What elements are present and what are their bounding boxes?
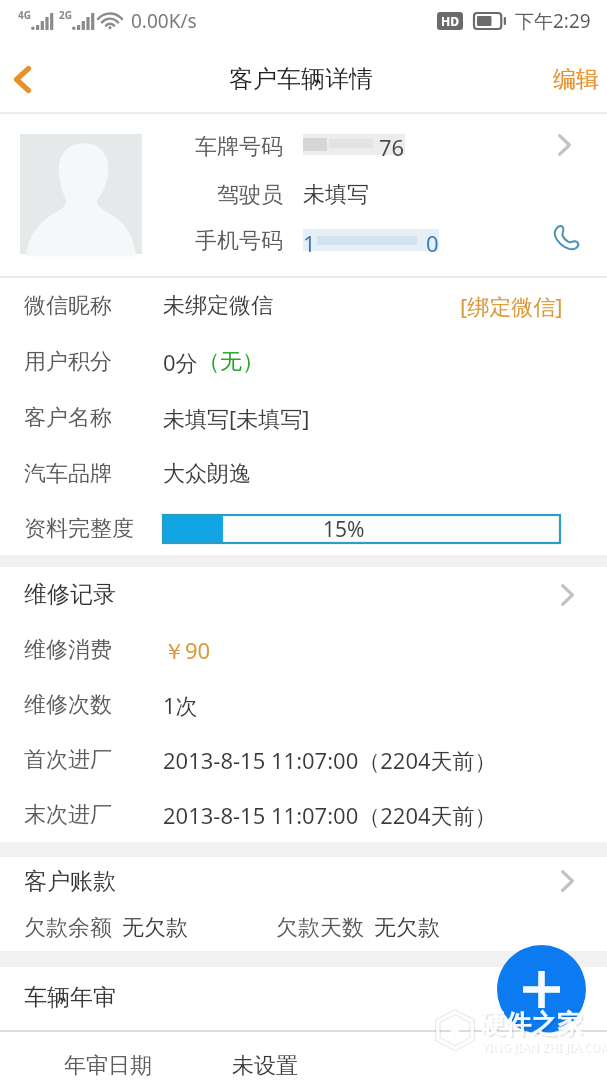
staticText: 维修消费 xyxy=(24,636,112,664)
staticText: 未填写 xyxy=(303,181,369,209)
staticText: 未设置 xyxy=(232,1052,298,1080)
staticText: 无欠款 xyxy=(122,914,188,942)
staticText: 未填写[未填写] xyxy=(163,403,310,433)
button[interactable]: [绑定微信] xyxy=(456,285,567,327)
button[interactable]: 车辆年审 xyxy=(0,967,607,1027)
staticText: 编辑 xyxy=(553,65,599,94)
staticText: 维修记录 xyxy=(24,580,116,609)
staticText: 欠款天数 xyxy=(276,914,364,942)
staticText: 客户车辆详情 xyxy=(229,64,373,94)
staticText: [绑定微信] xyxy=(460,291,563,321)
staticText: 资料完整度 xyxy=(24,515,134,543)
staticText: 维修次数 xyxy=(24,691,112,719)
staticText: 硬件之家 xyxy=(481,1010,585,1043)
staticText: 2013-8-15 11:07:00（2204天前） xyxy=(163,745,497,775)
staticText: 下午2:29 xyxy=(515,8,591,34)
button[interactable]: 客户账款 xyxy=(0,857,607,905)
staticText: YING JIAN ZHI JIA.COM xyxy=(481,1038,607,1054)
staticText: 无欠款 xyxy=(374,914,440,942)
staticText: HD xyxy=(441,13,459,29)
button[interactable]: Back xyxy=(0,46,48,112)
staticText: 客户账款 xyxy=(24,867,116,896)
staticText: 2G xyxy=(59,8,72,22)
staticText: 1次 xyxy=(163,690,198,720)
staticText: 汽车品牌 xyxy=(24,460,112,488)
staticText: 15% xyxy=(323,515,365,543)
staticText: 末次进厂 xyxy=(24,801,112,829)
button[interactable]: 维修记录 xyxy=(0,567,607,622)
staticText: 大众朗逸 xyxy=(163,460,251,488)
staticText: 1 xyxy=(303,228,316,254)
staticText: 硬件之家 xyxy=(479,1008,583,1041)
staticText: 首次进厂 xyxy=(24,746,112,774)
staticText: 76 xyxy=(379,132,405,158)
staticText: 2013-8-15 11:07:00（2204天前） xyxy=(163,800,497,830)
staticText: 4G xyxy=(18,8,31,22)
staticText: 手机号码 xyxy=(195,227,283,255)
staticText: （无） xyxy=(198,348,264,376)
staticText: 车辆年审 xyxy=(24,983,116,1012)
button[interactable]: Add xyxy=(497,945,586,1034)
staticText: 0分 xyxy=(163,347,198,377)
staticText: 欠款余额 xyxy=(24,914,112,942)
button[interactable]: Detail xyxy=(540,124,588,166)
staticText: 驾驶员 xyxy=(217,181,283,209)
staticText: 年审日期 xyxy=(64,1052,152,1080)
staticText: 0 xyxy=(426,228,439,254)
staticText: YING JIAN ZHI JIA.COM xyxy=(483,1040,607,1056)
staticText: 车牌号码 xyxy=(195,133,283,161)
staticText: ￥90 xyxy=(163,635,211,665)
staticText: 0.00K/s xyxy=(131,8,197,34)
staticText: 客户名称 xyxy=(24,404,112,432)
button[interactable]: Call xyxy=(541,211,593,263)
button[interactable]: 编辑 xyxy=(533,46,607,112)
staticText: 微信昵称 xyxy=(24,292,112,320)
staticText: 用户积分 xyxy=(24,348,112,376)
staticText: 未绑定微信 xyxy=(163,292,273,320)
